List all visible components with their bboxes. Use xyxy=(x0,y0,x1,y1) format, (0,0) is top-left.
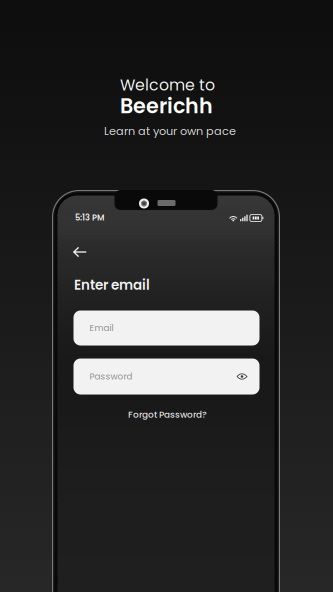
staticText: Learn at your own pace xyxy=(104,123,236,139)
staticText: Password xyxy=(89,370,132,383)
staticText: Email xyxy=(89,322,113,334)
button[interactable]: Back xyxy=(65,241,95,263)
staticText: Enter email xyxy=(74,276,150,294)
staticText: Welcome to xyxy=(120,74,215,96)
staticText: Forgot Password? xyxy=(128,408,207,421)
button[interactable]: Password xyxy=(73,358,259,394)
button[interactable]: Forgot Password? xyxy=(112,405,222,423)
staticText: Beerichh xyxy=(120,91,213,120)
staticText: 5:13 PM xyxy=(75,212,104,223)
button[interactable]: Email xyxy=(73,310,259,345)
